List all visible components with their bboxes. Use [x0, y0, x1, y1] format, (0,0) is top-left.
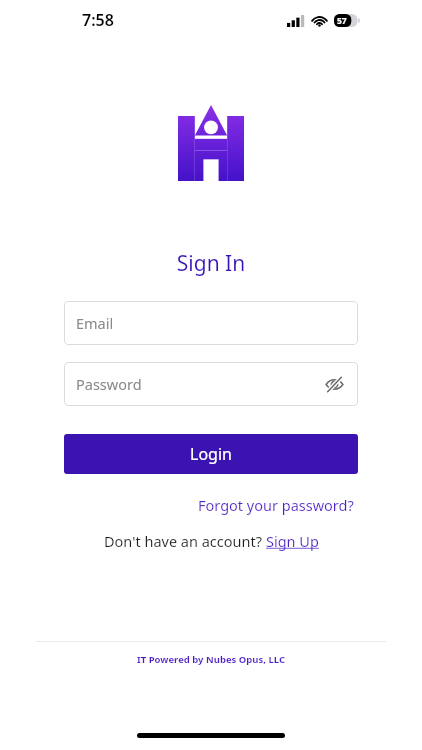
button[interactable]: Email [64, 301, 358, 345]
staticText: Email [76, 313, 114, 333]
staticText: 57 [337, 15, 347, 27]
staticText: Don't have an account? [104, 531, 266, 551]
staticText: 7:58 [82, 9, 114, 31]
staticText: Password [76, 374, 142, 394]
staticText: Sign In [64, 249, 358, 278]
button[interactable]: Forgot your password? [194, 491, 358, 519]
button[interactable]: Sign Up [266, 531, 319, 551]
staticText: Login [190, 443, 232, 465]
button[interactable]: Show password [322, 372, 346, 396]
staticText: IT Powered by Nubes Opus, LLC [137, 653, 285, 666]
button[interactable]: Login [64, 434, 358, 474]
button[interactable]: Password [64, 362, 358, 406]
